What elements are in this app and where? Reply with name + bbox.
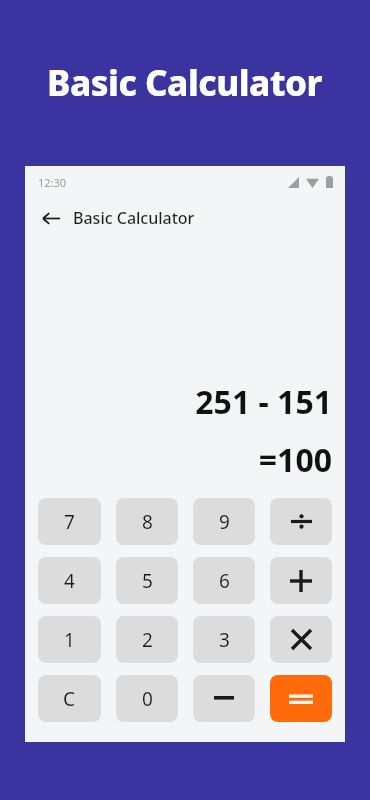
button[interactable]: 6 [193, 557, 255, 604]
button[interactable]: C [38, 675, 101, 722]
staticText: 0 [142, 686, 153, 712]
button[interactable] [193, 675, 255, 722]
button[interactable]: 2 [116, 616, 178, 663]
staticText: C [63, 686, 76, 712]
staticText: 12:30 [38, 175, 67, 190]
staticText: =100 [258, 438, 332, 482]
staticText: Basic Calculator [73, 207, 195, 229]
button[interactable]: 8 [116, 498, 178, 545]
button[interactable]: 5 [116, 557, 178, 604]
staticText: 4 [64, 568, 75, 594]
button[interactable] [270, 675, 332, 722]
button[interactable]: 1 [38, 616, 101, 663]
staticText: 6 [219, 568, 230, 594]
staticText: 5 [142, 568, 153, 594]
staticText: 3 [219, 627, 230, 653]
button[interactable]: Back [35, 202, 67, 234]
staticText: 8 [142, 509, 153, 535]
staticText: Basic Calculator [47, 59, 323, 107]
button[interactable]: 7 [38, 498, 101, 545]
staticText: 2 [142, 627, 153, 653]
staticText: 7 [64, 509, 75, 535]
button[interactable]: 4 [38, 557, 101, 604]
button[interactable] [270, 557, 332, 604]
button[interactable]: 3 [193, 616, 255, 663]
staticText: 1 [64, 627, 75, 653]
staticText: 9 [219, 509, 230, 535]
staticText: 251 - 151 [195, 380, 332, 424]
button[interactable] [270, 616, 332, 663]
button[interactable]: 9 [193, 498, 255, 545]
button[interactable]: 0 [116, 675, 178, 722]
button[interactable] [270, 498, 332, 545]
